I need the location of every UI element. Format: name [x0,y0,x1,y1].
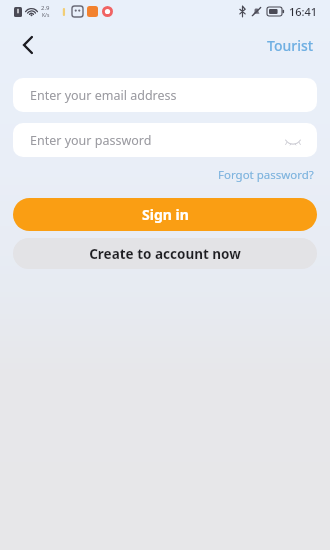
staticText: 2.9 [41,4,50,12]
staticText: Tourist [267,36,314,55]
button[interactable]: Create to account now [13,238,317,269]
button[interactable]: Enter your password [13,123,317,157]
button[interactable]: Back [8,25,48,65]
staticText: Enter your password [30,132,152,149]
button[interactable]: Tourist [261,32,320,59]
button[interactable]: Forgot password? [215,165,317,185]
staticText: Forgot password? [218,167,314,183]
staticText: 16:41 [289,4,318,19]
button[interactable]: Enter your email address [13,78,317,112]
staticText: K/s [42,12,50,19]
staticText: Enter your email address [30,87,177,104]
button[interactable]: Show password [281,128,305,152]
staticText: Sign in [142,205,189,224]
button[interactable]: Sign in [13,198,317,231]
staticText: Create to account now [89,245,241,263]
